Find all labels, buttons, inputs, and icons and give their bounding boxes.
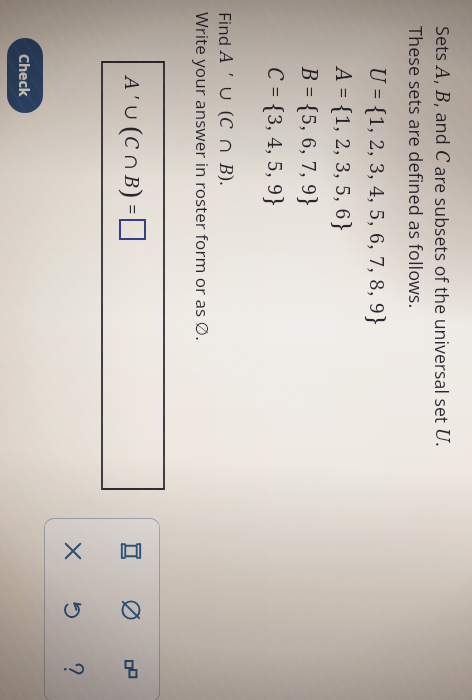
- staticText: }: [327, 221, 360, 232]
- staticText: C: [261, 67, 290, 81]
- staticText: =: [262, 81, 289, 103]
- staticText: Write your answer in roster form or as ∅…: [191, 12, 214, 341]
- button[interactable]: Answer entry field: [102, 62, 164, 489]
- staticText: U: [430, 428, 456, 442]
- staticText: U: [363, 67, 392, 83]
- staticText: {: [293, 103, 326, 114]
- staticText: 5, 6, 7, 9: [296, 114, 323, 196]
- button[interactable]: Check: [7, 38, 43, 113]
- staticText: }: [361, 315, 394, 326]
- staticText: ): [114, 189, 151, 199]
- staticText: =: [364, 83, 391, 105]
- staticText: {: [259, 103, 292, 114]
- staticText: =: [296, 81, 323, 103]
- button[interactable]: Template: [102, 522, 160, 580]
- staticText: are subsets of the universal set: [430, 162, 454, 428]
- staticText: A: [119, 76, 146, 91]
- staticText: Check: [15, 54, 34, 97]
- staticText: B: [214, 163, 239, 175]
- button[interactable]: Pair of boxes: [102, 639, 160, 698]
- staticText: (: [114, 126, 151, 136]
- staticText: B: [295, 67, 324, 81]
- staticText: ′ ∪: [119, 91, 145, 126]
- staticText: 3, 4, 5, 9: [262, 114, 289, 196]
- staticText: ).: [214, 175, 239, 186]
- staticText: A: [430, 66, 456, 80]
- staticText: =: [330, 82, 357, 104]
- staticText: Find: [214, 12, 237, 51]
- staticText: , and: [430, 103, 455, 150]
- staticText: }: [259, 196, 292, 207]
- staticText: 1, 2, 3, 5, 6: [330, 115, 357, 221]
- staticText: A: [329, 67, 358, 82]
- staticText: ′ ∪ (: [214, 64, 239, 117]
- staticText: A: [214, 51, 239, 64]
- staticText: Sets: [430, 26, 455, 66]
- button[interactable]: Clear: [44, 522, 102, 580]
- staticText: C: [214, 117, 239, 129]
- staticText: =: [119, 199, 145, 220]
- staticText: }: [293, 196, 326, 207]
- staticText: {: [327, 104, 360, 115]
- staticText: These sets are defined as follows.: [403, 26, 428, 309]
- staticText: C: [430, 150, 456, 162]
- staticText: {: [361, 105, 394, 116]
- button[interactable]: Empty set: [102, 580, 160, 639]
- staticText: B: [119, 175, 146, 189]
- staticText: B: [430, 90, 456, 103]
- staticText: .: [430, 442, 455, 447]
- staticText: ∩: [119, 149, 145, 175]
- button[interactable]: Help: [44, 639, 102, 698]
- staticText: C: [119, 136, 146, 149]
- staticText: 1, 2, 3, 4, 5, 6, 7, 8, 9: [364, 116, 391, 315]
- staticText: ∩: [214, 129, 239, 163]
- staticText: ,: [430, 80, 455, 90]
- button[interactable]: Undo: [44, 580, 102, 639]
